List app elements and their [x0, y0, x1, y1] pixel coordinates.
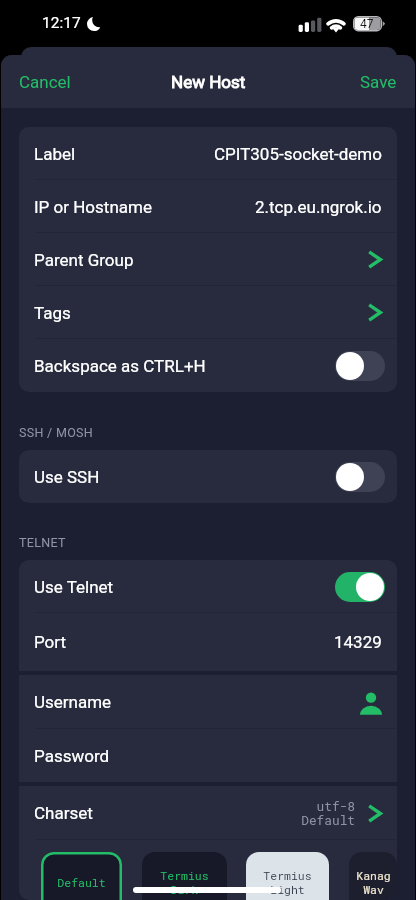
- staticText: Tags: [34, 303, 71, 323]
- button[interactable]: Cancel: [1, 55, 89, 108]
- button[interactable]: Tags: [19, 286, 397, 339]
- staticText: Username: [34, 692, 112, 712]
- button[interactable]: Use Telnet: [19, 560, 397, 613]
- button[interactable]: Charset: [19, 786, 397, 840]
- button[interactable]: Password: [19, 729, 397, 782]
- button[interactable]: IP or Hostname: [19, 180, 397, 233]
- button[interactable]: Username: [19, 675, 397, 729]
- staticText: Label: [34, 144, 76, 164]
- staticText: Kanag Wav: [356, 868, 391, 897]
- staticText: Backspace as CTRL+H: [34, 356, 206, 376]
- button[interactable]: Kanag Wav: [349, 852, 397, 900]
- staticText: Cancel: [19, 72, 71, 92]
- staticText: SSH / MOSH: [19, 425, 93, 440]
- staticText: Charset: [34, 803, 93, 823]
- button[interactable]: Backspace as CTRL+H: [19, 339, 397, 392]
- button[interactable]: Default: [41, 852, 122, 900]
- staticText: TELNET: [19, 535, 66, 550]
- staticText: 2.tcp.eu.ngrok.io: [255, 197, 382, 217]
- button[interactable]: Use SSH: [19, 450, 397, 503]
- other: Choose from contacts: [360, 692, 382, 715]
- staticText: Use Telnet: [34, 577, 114, 597]
- staticText: Save: [360, 72, 397, 92]
- staticText: Port: [34, 632, 67, 652]
- button[interactable]: Parent Group: [19, 233, 397, 286]
- staticText: 12:17: [42, 14, 81, 32]
- staticText: 14329: [334, 632, 382, 652]
- staticText: Termius Light: [263, 868, 312, 897]
- staticText: Termius Dark: [160, 868, 209, 897]
- button[interactable]: Termius Light: [246, 852, 329, 900]
- button[interactable]: Termius Dark: [142, 852, 227, 900]
- staticText: Password: [34, 746, 110, 766]
- button[interactable]: Save: [342, 55, 415, 108]
- staticText: 47: [360, 17, 374, 31]
- staticText: Default: [57, 875, 106, 890]
- staticText: utf-8 Default: [301, 798, 355, 829]
- button[interactable]: Label: [19, 127, 397, 180]
- staticText: IP or Hostname: [34, 197, 152, 217]
- staticText: Use SSH: [34, 467, 100, 487]
- staticText: New Host: [171, 72, 246, 92]
- staticText: Parent Group: [34, 250, 134, 270]
- button[interactable]: Port: [19, 613, 397, 671]
- staticText: CPIT305-socket-demo: [214, 144, 382, 164]
